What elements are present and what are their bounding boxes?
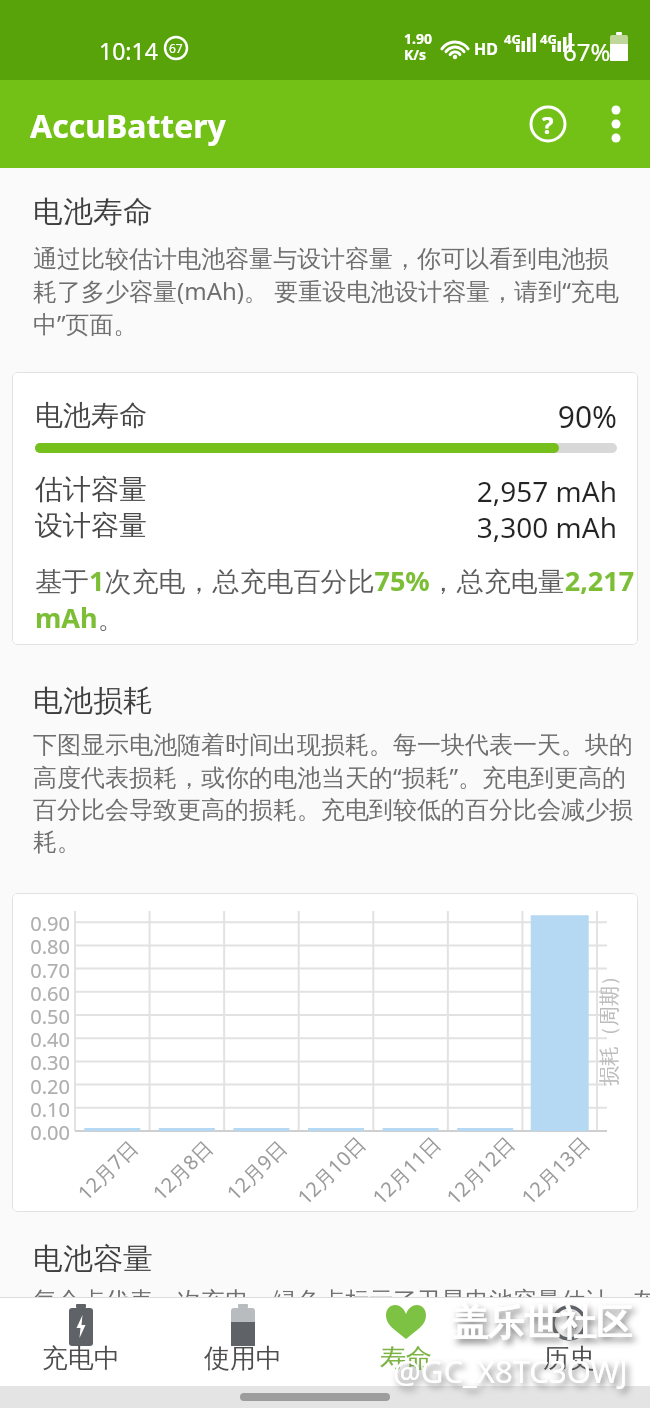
staticText: 历史: [543, 1342, 595, 1375]
staticText: 电池寿命: [33, 193, 153, 231]
staticText: 12月10日: [291, 1130, 371, 1210]
staticText: AccuBattery: [30, 104, 226, 148]
staticText: 12月9日: [221, 1134, 293, 1206]
staticText: 67%: [563, 35, 611, 68]
button[interactable]: [592, 100, 640, 148]
staticText: 通过比较估计电池容量与设计容量，你可以看到电池损 耗了多少容量(mAh)。 要重…: [33, 244, 619, 340]
button[interactable]: 充电中: [0, 1298, 162, 1375]
staticText: 0.10: [26, 1096, 70, 1123]
staticText: 电池寿命: [35, 398, 147, 433]
staticText: 12月11日: [366, 1130, 446, 1210]
button[interactable]: ?: [524, 100, 572, 148]
staticText: 1.90: [404, 29, 432, 48]
staticText: 盖乐世社区: [452, 1300, 632, 1345]
staticText: 12月7日: [72, 1134, 144, 1206]
staticText: 损耗（周期）: [597, 966, 622, 1086]
staticText: 0.90: [26, 910, 70, 937]
staticText: 4G: [540, 30, 557, 48]
staticText: 3,300 mAh: [12, 508, 617, 546]
staticText: 12月13日: [515, 1130, 595, 1210]
staticText: 67: [169, 40, 183, 56]
staticText: 设计容量: [35, 508, 147, 543]
staticText: 0.60: [26, 980, 70, 1007]
staticText: 每个点代表一次充电。绿色点标示了卫星电池容量估计，灰色: [33, 1286, 650, 1297]
staticText: 12月8日: [147, 1134, 219, 1206]
staticText: 0.20: [26, 1073, 70, 1100]
staticText: 充电中: [42, 1342, 120, 1375]
staticText: K/s: [404, 45, 427, 64]
staticText: 估计容量: [35, 472, 147, 507]
staticText: HD: [474, 38, 498, 60]
staticText: 0.40: [26, 1026, 70, 1053]
staticText: 10:14: [99, 35, 158, 66]
staticText: 0.00: [26, 1119, 70, 1146]
staticText: 电池损耗: [33, 682, 153, 720]
button[interactable]: 寿命: [324, 1298, 487, 1375]
staticText: @GC_X8TC3OWJ: [393, 1350, 628, 1392]
staticText: ?: [542, 108, 554, 141]
staticText: 0.50: [26, 1003, 70, 1030]
staticText: 0.80: [26, 933, 70, 960]
staticText: 0.30: [26, 1049, 70, 1076]
button[interactable]: 历史: [487, 1298, 650, 1375]
staticText: 4G: [504, 30, 521, 48]
staticText: 下图显示电池随着时间出现损耗。每一块代表一天。块的 高度代表损耗，或你的电池当天…: [33, 730, 633, 857]
staticText: 电池容量: [33, 1240, 153, 1278]
staticText: 寿命: [380, 1342, 432, 1375]
staticText: 90%: [12, 396, 617, 437]
staticText: 基于1次充电，总充电百分比75%，总充电量2,217 mAh。: [35, 562, 638, 636]
staticText: 12月12日: [440, 1130, 520, 1210]
staticText: 0.70: [26, 957, 70, 984]
staticText: 2,957 mAh: [12, 472, 617, 510]
staticText: 使用中: [204, 1342, 282, 1375]
button[interactable]: 使用中: [162, 1298, 324, 1375]
